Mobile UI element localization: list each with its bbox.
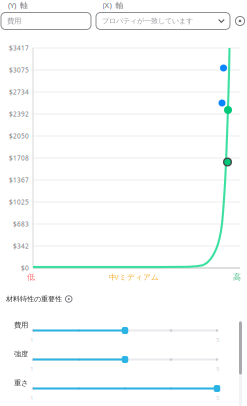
staticText: 低	[27, 272, 35, 282]
staticText: 5	[216, 335, 220, 344]
button[interactable]: 費用	[122, 327, 128, 334]
staticText: $3075	[9, 66, 29, 74]
staticText: 1	[30, 393, 34, 402]
staticText: 中/ミディアム	[109, 272, 159, 282]
staticText: 材料特性の重要性	[6, 294, 62, 304]
staticText: 費用	[14, 320, 28, 330]
staticText: 5	[216, 393, 220, 402]
button[interactable]: プロパティが一致しています	[96, 12, 230, 29]
staticText: $1367	[9, 176, 29, 184]
staticText: 重さ	[14, 378, 29, 388]
staticText: $2734	[9, 88, 29, 96]
staticText: $0	[21, 264, 29, 272]
staticText: $1025	[9, 198, 29, 206]
button[interactable]: 費用	[1, 12, 91, 29]
staticText: 1	[30, 335, 34, 344]
staticText: $3417	[9, 44, 29, 52]
staticText: 費用	[7, 16, 21, 26]
staticText: $2392	[9, 110, 29, 118]
staticText: 5	[216, 364, 220, 373]
staticText: (Y) 軸	[8, 0, 28, 10]
staticText: $1708	[9, 154, 29, 162]
staticText: 1	[30, 364, 34, 373]
staticText: 高	[233, 272, 241, 282]
staticText: 強度	[14, 349, 28, 359]
button[interactable]: Info	[235, 16, 244, 25]
button[interactable]: 強度	[122, 356, 128, 363]
staticText: $683	[13, 220, 29, 228]
staticText: $342	[13, 242, 29, 250]
staticText: プロパティが一致しています	[102, 16, 193, 25]
staticText: $2050	[9, 132, 29, 140]
button[interactable]: 重さ	[214, 385, 220, 392]
staticText: (X) 軸	[102, 0, 123, 10]
